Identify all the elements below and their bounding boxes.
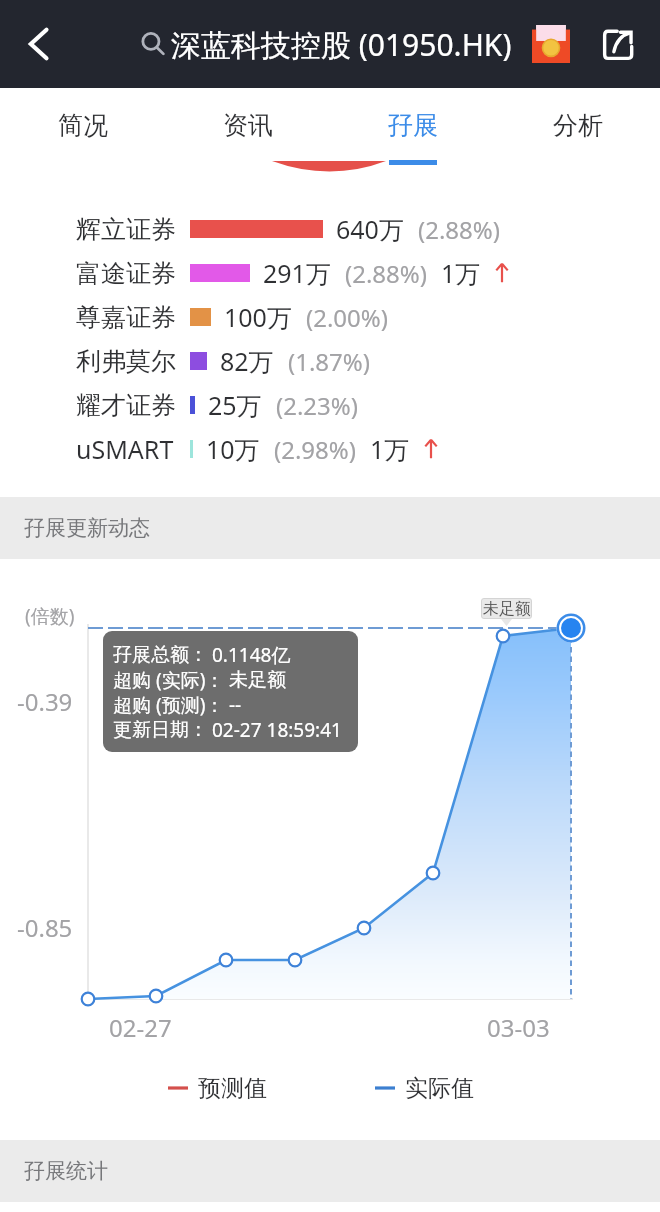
- staticText: -0.85: [17, 911, 73, 944]
- staticText: (2.88%): [345, 257, 427, 290]
- staticText: 简况: [58, 110, 108, 141]
- staticText: 未足额: [483, 599, 531, 619]
- staticText: 未足额: [229, 668, 286, 692]
- staticText: 超购 (预测)：: [113, 692, 225, 717]
- staticText: 291万: [263, 256, 331, 290]
- staticText: (2.23%): [276, 389, 358, 422]
- staticText: 资讯: [223, 110, 273, 141]
- staticText: 分析: [553, 110, 603, 141]
- staticText: --: [229, 692, 242, 717]
- button[interactable]: uSMART: [0, 427, 660, 471]
- staticText: 0.1148亿: [212, 642, 291, 667]
- staticText: 尊嘉证券: [76, 302, 176, 333]
- staticText: 孖展更新动态: [24, 515, 150, 541]
- staticText: (倍数): [25, 603, 75, 629]
- staticText: 03-03: [487, 1011, 550, 1044]
- button[interactable]: 辉立证券: [0, 207, 660, 251]
- staticText: 孖展统计: [24, 1158, 108, 1184]
- staticText: (2.00%): [306, 301, 388, 334]
- staticText: 耀才证券: [76, 390, 176, 421]
- staticText: (2.98%): [274, 433, 356, 466]
- staticText: 孖展总额：: [113, 643, 208, 667]
- staticText: 实际值: [405, 1074, 474, 1103]
- staticText: -0.39: [17, 685, 73, 718]
- button[interactable]: 实际值: [375, 1050, 474, 1126]
- staticText: 640万: [336, 212, 404, 246]
- button[interactable]: 尊嘉证券: [0, 295, 660, 339]
- staticText: 02-27: [109, 1011, 172, 1044]
- button[interactable]: Back: [6, 0, 72, 88]
- button[interactable]: Share: [590, 16, 646, 72]
- staticText: 富途证券: [76, 258, 176, 289]
- button[interactable]: Red packet: [528, 21, 574, 67]
- staticText: (2.88%): [418, 213, 500, 246]
- staticText: 孖展: [388, 110, 438, 141]
- staticText: 10万: [206, 432, 260, 466]
- button[interactable]: 资讯: [168, 88, 328, 163]
- staticText: 100万: [224, 300, 292, 334]
- staticText: (1.87%): [288, 345, 370, 378]
- button[interactable]: 耀才证券: [0, 383, 660, 427]
- staticText: 82万: [220, 344, 274, 378]
- staticText: 更新日期：: [113, 718, 208, 742]
- staticText: 辉立证券: [76, 214, 176, 245]
- staticText: 25万: [208, 388, 262, 422]
- button[interactable]: 孖展: [333, 88, 493, 163]
- staticText: 1万: [441, 256, 481, 290]
- staticText: 深蓝科技控股 (01950.HK): [171, 24, 512, 65]
- button[interactable]: 简况: [3, 88, 163, 163]
- staticText: 1万: [370, 432, 410, 466]
- button[interactable]: 利弗莫尔: [0, 339, 660, 383]
- staticText: 超购 (实际)：: [113, 667, 225, 692]
- button[interactable]: 预测值: [168, 1050, 267, 1126]
- staticText: 利弗莫尔: [76, 346, 176, 377]
- button[interactable]: 富途证券: [0, 251, 660, 295]
- button[interactable]: 分析: [498, 88, 658, 163]
- staticText: 02-27 18:59:41: [212, 717, 342, 742]
- staticText: 预测值: [198, 1074, 267, 1103]
- staticText: uSMART: [76, 432, 174, 466]
